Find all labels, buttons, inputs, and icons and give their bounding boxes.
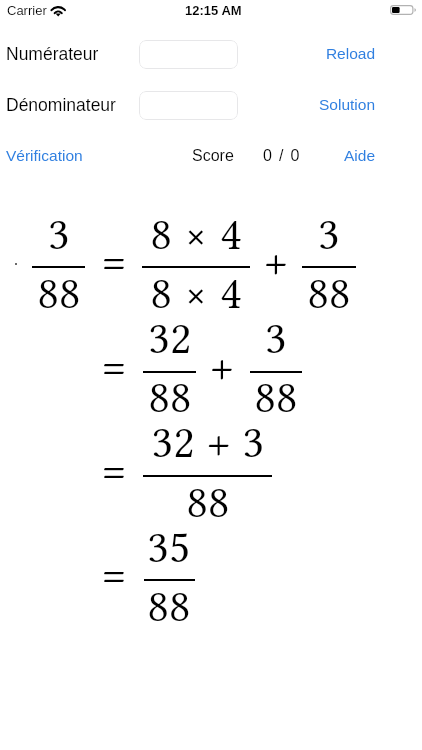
- button[interactable]: Reload: [255, 45, 375, 62]
- staticText: Score: [192, 147, 234, 165]
- staticText: 32: [0, 312, 340, 364]
- staticText: Aide: [255, 147, 375, 164]
- staticText: Reload: [255, 45, 375, 62]
- staticText: 35: [0, 521, 339, 573]
- staticText: 88: [38, 476, 378, 528]
- other: Wi-Fi signal: [51, 6, 66, 17]
- staticText: =: [0, 235, 284, 287]
- other: Battery: [390, 5, 417, 16]
- staticText: =: [0, 340, 284, 392]
- staticText: 3: [0, 208, 229, 260]
- staticText: +: [52, 340, 392, 392]
- staticText: 12:15 AM: [185, 3, 242, 18]
- button[interactable]: Vérification: [6, 147, 83, 164]
- staticText: 32 + 3: [38, 416, 378, 468]
- staticText: 3: [106, 312, 422, 364]
- staticText: Solution: [255, 96, 375, 113]
- staticText: 8 × 4: [26, 208, 366, 260]
- staticText: 88: [159, 267, 422, 319]
- button[interactable]: Numérateur: [139, 40, 238, 69]
- staticText: 8 × 4: [26, 267, 366, 319]
- staticText: 88: [0, 371, 340, 423]
- button[interactable]: Dénominateur: [139, 91, 238, 120]
- staticText: 3: [159, 208, 422, 260]
- staticText: 0 / 0: [263, 147, 301, 165]
- staticText: +: [106, 235, 422, 287]
- staticText: 88: [106, 371, 422, 423]
- staticText: 88: [0, 267, 229, 319]
- staticText: Carrier: [7, 3, 47, 18]
- staticText: =: [0, 548, 284, 600]
- button[interactable]: Solution: [255, 96, 375, 113]
- staticText: Vérification: [6, 147, 83, 164]
- button[interactable]: Aide: [255, 147, 375, 164]
- staticText: =: [0, 444, 284, 496]
- staticText: Numérateur: [6, 44, 99, 64]
- staticText: Dénominateur: [6, 95, 116, 115]
- staticText: 88: [0, 580, 339, 632]
